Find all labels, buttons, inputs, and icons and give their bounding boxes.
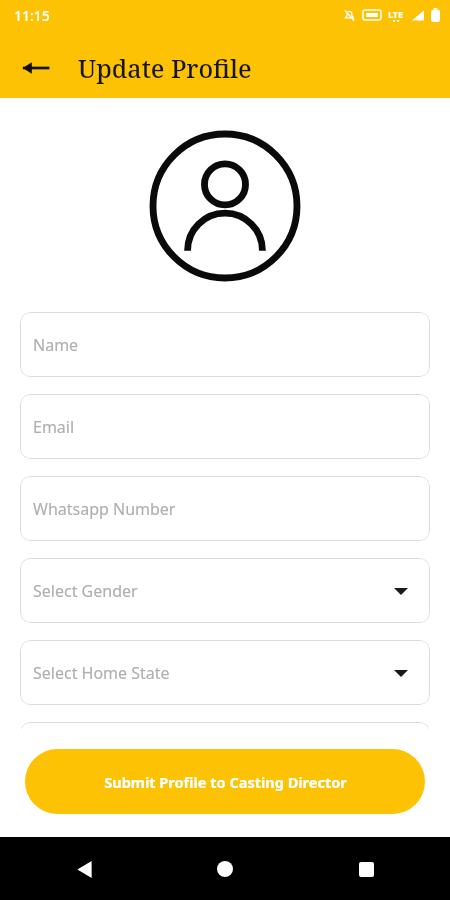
button[interactable]: Recent apps — [344, 847, 388, 891]
button[interactable]: Name — [20, 312, 430, 377]
staticText: Update Profile — [78, 51, 252, 85]
staticText: 11:15 — [14, 6, 50, 25]
button[interactable]: Back — [12, 44, 60, 92]
staticText: Whatsapp Number — [33, 498, 176, 520]
button[interactable]: Email — [20, 394, 430, 459]
button[interactable]: Submit Profile to Casting Director — [25, 749, 425, 814]
button[interactable]: Whatsapp Number — [20, 476, 430, 541]
staticText: Name — [33, 334, 79, 356]
staticText: Select Gender — [33, 580, 138, 602]
button[interactable]: Select Gender — [20, 558, 430, 623]
button[interactable] — [20, 722, 430, 787]
button[interactable]: Back — [62, 847, 106, 891]
button[interactable]: Profile photo — [149, 130, 301, 282]
staticText: Select Home State — [33, 662, 170, 684]
staticText: LTE — [388, 8, 404, 20]
staticText: Email — [33, 416, 75, 438]
button[interactable]: Home — [203, 847, 247, 891]
staticText: Submit Profile to Casting Director — [104, 772, 347, 792]
button[interactable]: Select Home State — [20, 640, 430, 705]
